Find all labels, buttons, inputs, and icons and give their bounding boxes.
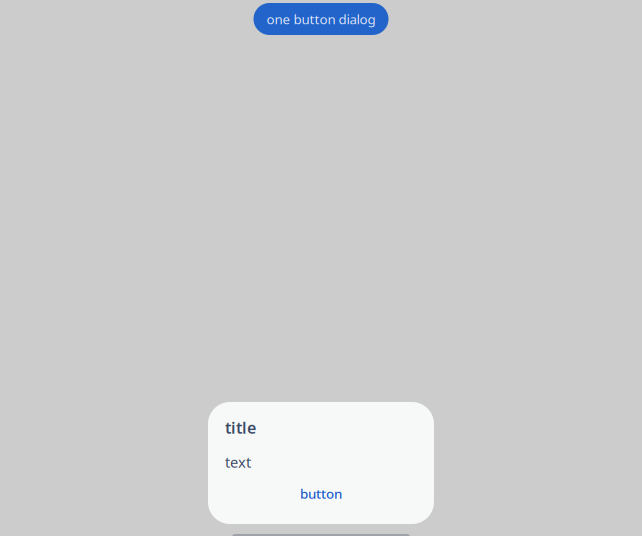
staticText: button bbox=[300, 485, 342, 502]
button[interactable]: button bbox=[292, 480, 350, 507]
staticText: one button dialog bbox=[266, 10, 375, 28]
staticText: text bbox=[225, 452, 251, 472]
button[interactable]: one button dialog bbox=[253, 3, 388, 35]
staticText: title bbox=[225, 417, 256, 438]
